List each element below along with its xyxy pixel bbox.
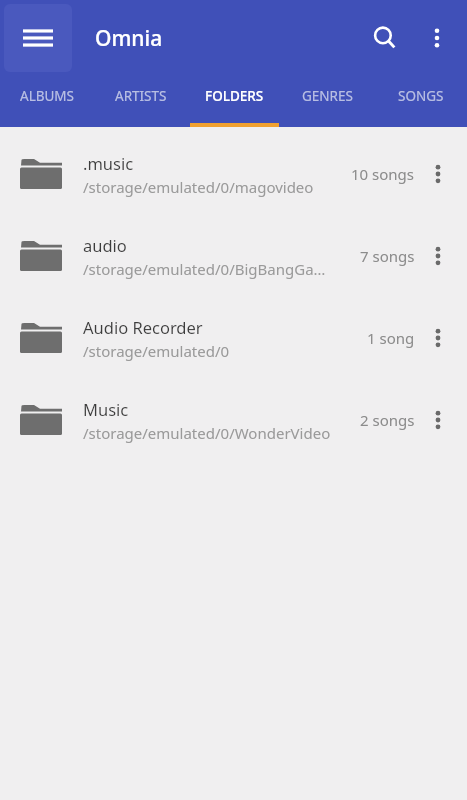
staticText: Audio Recorder <box>83 316 203 338</box>
staticText: ALBUMS <box>20 87 74 105</box>
button[interactable]: Open navigation menu <box>4 4 72 72</box>
staticText: /storage/emulated/0/WonderVideo <box>83 423 331 443</box>
button[interactable]: Music <box>0 379 467 461</box>
button[interactable]: ALBUMS <box>0 76 94 127</box>
button[interactable]: SONGS <box>374 76 467 127</box>
button[interactable]: ARTISTS <box>94 76 188 127</box>
button[interactable]: Search <box>359 12 411 64</box>
staticText: /storage/emulated/0 <box>83 341 230 361</box>
staticText: .music <box>83 152 134 174</box>
staticText: /storage/emulated/0/magovideo <box>83 177 314 197</box>
button[interactable]: Audio Recorder <box>0 297 467 379</box>
staticText: 7 songs <box>360 246 415 266</box>
staticText: audio <box>83 234 127 256</box>
button[interactable]: More options for .music <box>415 151 461 197</box>
button[interactable]: GENRES <box>281 76 374 127</box>
button[interactable]: More options <box>411 12 463 64</box>
staticText: /storage/emulated/0/BigBangGa… <box>83 259 326 279</box>
staticText: Music <box>83 398 129 420</box>
staticText: FOLDERS <box>205 87 264 105</box>
staticText: GENRES <box>302 87 353 105</box>
staticText: 1 song <box>367 328 415 348</box>
staticText: ARTISTS <box>115 87 167 105</box>
button[interactable]: More options for Music <box>415 397 461 443</box>
staticText: 10 songs <box>351 164 415 184</box>
button[interactable]: More options for Audio Recorder <box>415 315 461 361</box>
button[interactable]: More options for audio <box>415 233 461 279</box>
staticText: SONGS <box>398 87 444 105</box>
staticText: Omnia <box>95 24 163 53</box>
button[interactable]: .music <box>0 133 467 215</box>
staticText: 2 songs <box>360 410 415 430</box>
button[interactable]: FOLDERS <box>188 76 281 127</box>
button[interactable]: audio <box>0 215 467 297</box>
